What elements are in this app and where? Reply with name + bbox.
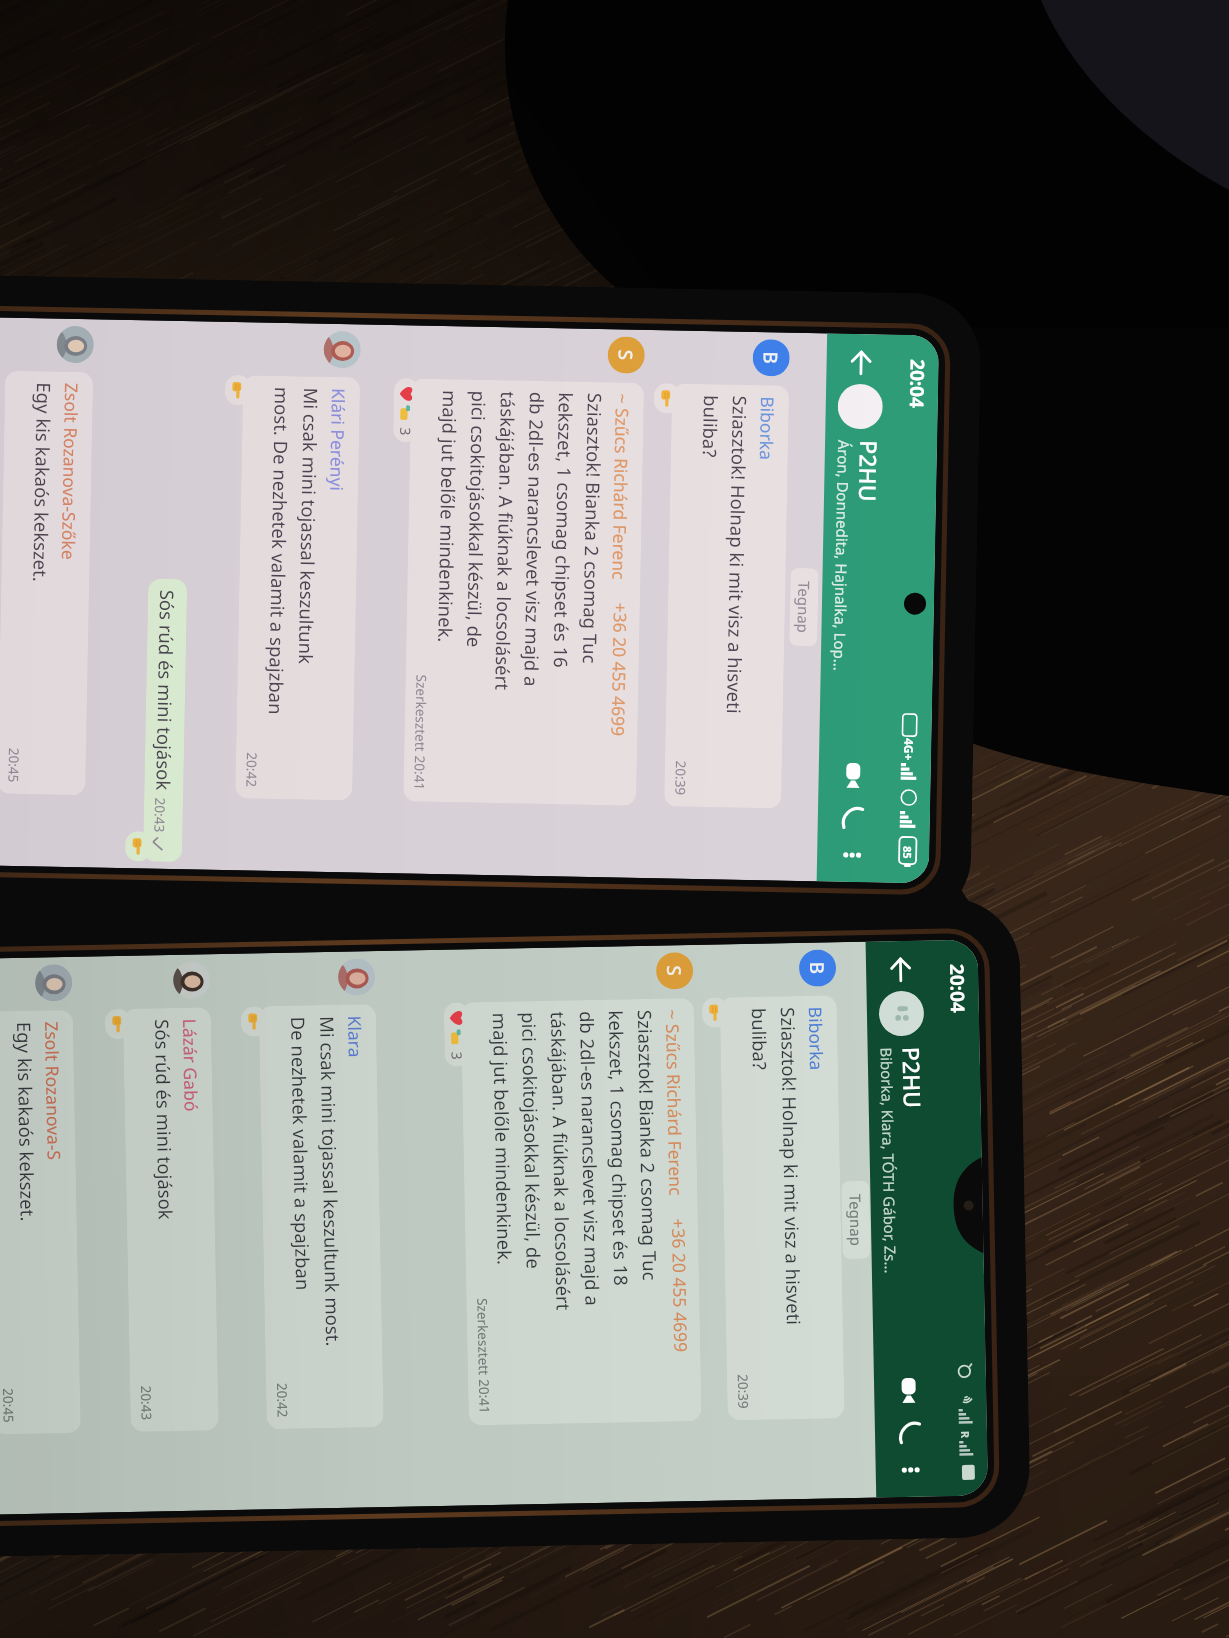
- button[interactable]: Thumbs up reaction: [654, 383, 680, 414]
- staticText: 20:39: [671, 760, 690, 796]
- staticText: 20:42: [273, 1383, 292, 1418]
- staticText: Lázár Gabó: [177, 1018, 206, 1112]
- button[interactable]: ~ Szűcs Richárd Ferenc: [461, 998, 702, 1425]
- staticText: Sós rúd és mini tojások: [148, 1019, 181, 1220]
- button[interactable]: Thumbs up reaction: [241, 1006, 267, 1037]
- button[interactable]: Video call: [888, 1368, 931, 1411]
- staticText: Sziasztok! Bianka 2 csomag Tuc kekszet, …: [430, 390, 610, 692]
- staticText: Sziasztok! Bianka 2 csomag Tuc kekszet, …: [486, 1010, 666, 1312]
- button[interactable]: Profile photo: [35, 964, 73, 1002]
- staticText: 20:43: [137, 1385, 156, 1421]
- staticText: Tegnap: [845, 1194, 866, 1246]
- staticText: Egy kis kakaós kekszet.: [26, 382, 59, 583]
- staticText: Sziasztok! Holnap ki mit visz a hisveti …: [691, 395, 755, 714]
- button[interactable]: Profile photo: [323, 331, 361, 368]
- button[interactable]: Profile photo: [607, 336, 645, 374]
- staticText: P2HU: [853, 440, 885, 503]
- button[interactable]: More options: [835, 838, 869, 872]
- button[interactable]: Klári Perényi: [235, 375, 360, 800]
- staticText: B: [758, 351, 784, 365]
- staticText: B: [804, 961, 830, 975]
- button[interactable]: P2HU: [875, 990, 934, 1369]
- staticText: Klara: [342, 1015, 370, 1058]
- staticText: 20:39: [734, 1374, 753, 1409]
- button[interactable]: Video call: [832, 754, 875, 796]
- staticText: 3: [448, 1051, 467, 1061]
- button[interactable]: 3: [444, 1002, 470, 1067]
- button[interactable]: Profile photo: [56, 326, 94, 363]
- staticText: Zsolt Rozanova-S: [39, 1021, 69, 1160]
- staticText: Sós rúd és mini tojások: [151, 590, 180, 791]
- staticText: Zsolt Rozanova-Szőke: [56, 383, 86, 560]
- staticText: P2HU: [897, 1046, 929, 1109]
- staticText: 20:41: [475, 1379, 494, 1414]
- button[interactable]: Thumbs up reaction: [225, 375, 251, 405]
- staticText: 4G+: [901, 738, 917, 761]
- button[interactable]: Profile photo: [338, 958, 375, 996]
- staticText: Klári Perényi: [324, 388, 353, 491]
- staticText: Szerkesztett: [473, 1298, 493, 1379]
- staticText: R: [958, 1431, 973, 1439]
- button[interactable]: Biborka: [720, 995, 845, 1420]
- button[interactable]: Profile photo: [173, 961, 210, 999]
- staticText: 20:45: [0, 1388, 18, 1423]
- button[interactable]: Back: [879, 947, 923, 991]
- staticText: +36 20 455 4699: [606, 602, 633, 737]
- staticText: 20:42: [242, 752, 261, 788]
- button[interactable]: P2HU: [828, 384, 886, 754]
- staticText: +36 20 455 4699: [667, 1218, 693, 1352]
- staticText: 20:04: [944, 964, 971, 1013]
- staticText: Áron, Donnedita, Hajnalka, Lop...: [830, 440, 854, 672]
- button[interactable]: Profile photo: [752, 339, 790, 377]
- button[interactable]: Biborka: [664, 383, 789, 809]
- button[interactable]: ~ Szűcs Richárd Ferenc: [403, 378, 644, 806]
- button[interactable]: Thumbs up reaction: [125, 831, 151, 861]
- staticText: Tegnap: [793, 581, 814, 633]
- staticText: 20:45: [4, 748, 23, 783]
- button[interactable]: Profile photo: [799, 949, 836, 987]
- button[interactable]: Profile photo: [656, 952, 693, 990]
- button[interactable]: Back: [839, 340, 884, 384]
- staticText: Sziasztok! Holnap ki mit visz a hisveti …: [745, 1007, 809, 1326]
- button[interactable]: Klara: [259, 1004, 384, 1429]
- staticText: ~ Szűcs Richárd Ferenc: [660, 1009, 690, 1197]
- staticText: S: [661, 965, 687, 977]
- button[interactable]: Thumbs up reaction: [105, 1009, 131, 1039]
- staticText: ~ Szűcs Richárd Ferenc: [606, 393, 637, 581]
- button[interactable]: Thumbs up reaction: [702, 997, 728, 1028]
- staticText: 3: [396, 427, 415, 437]
- staticText: S: [613, 349, 639, 361]
- staticText: Mi csak mini tojassal keszultunk most. D…: [262, 387, 326, 716]
- staticText: 85: [900, 846, 915, 859]
- staticText: Biborka, Klara, TÓTH Gábor, Zs...: [877, 1047, 901, 1274]
- button[interactable]: More options: [893, 1453, 928, 1487]
- staticText: Biborka: [754, 396, 782, 460]
- staticText: 20:04: [904, 359, 931, 408]
- staticText: Mi csak mini tojassal keszultunk most. D…: [284, 1016, 348, 1348]
- staticText: Egy kis kakaós kekszet.: [10, 1022, 43, 1222]
- button[interactable]: Call: [831, 796, 874, 838]
- staticText: Biborka: [803, 1006, 831, 1071]
- button[interactable]: 3: [393, 378, 419, 443]
- button[interactable]: Lázár Gabó: [123, 1007, 219, 1432]
- button[interactable]: Zsolt Rozanova-S: [0, 1010, 81, 1434]
- button[interactable]: Sós rúd és mini tojások: [143, 578, 187, 862]
- staticText: 20:41: [410, 755, 429, 791]
- staticText: Szerkesztett: [411, 674, 431, 756]
- button[interactable]: Call: [889, 1410, 931, 1453]
- staticText: 20:43: [150, 797, 169, 833]
- button[interactable]: Zsolt Rozanova-Szőke: [0, 371, 93, 795]
